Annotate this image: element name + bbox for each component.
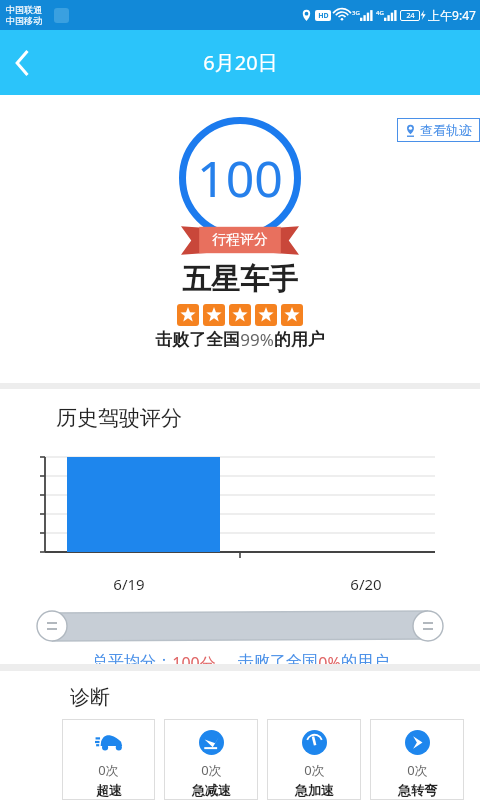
button[interactable]: 0次 [370,719,464,800]
staticText: 查看轨迹 [420,122,472,138]
staticText: 击败了全国 [155,329,240,350]
staticText: 的用户 [341,652,389,664]
staticText: 历史驾驶评分 [56,405,182,431]
button[interactable]: 0次 [164,719,258,800]
staticText: 0次 [201,761,222,779]
staticText: 4G [376,9,384,17]
staticText: 0次 [407,761,428,779]
staticText: 0% [318,652,341,664]
staticText: 6/19 [113,574,145,594]
staticText: 0次 [304,761,325,779]
staticText: 3G [352,9,360,17]
staticText: 0次 [98,761,119,779]
staticText: 五星车手 [182,261,298,298]
staticText: 24 [406,11,415,21]
staticText: HD [318,11,329,21]
staticText: 上午9:47 [428,7,476,23]
staticText: 诊断 [70,685,110,710]
staticText: 6/20 [350,574,382,594]
staticText: 100分 [172,652,216,664]
button[interactable]: 0次 [267,719,361,800]
staticText: 中国联通 [6,4,42,15]
staticText: 击败了全国 [238,652,318,664]
staticText: 99% [240,328,274,351]
button[interactable]: Back [0,40,46,86]
staticText: 急加速 [295,782,334,798]
button[interactable]: 0次 [62,719,155,800]
staticText: 100 [197,144,283,212]
staticText: 6月20日 [203,49,278,76]
staticText: 急转弯 [398,782,437,798]
staticText: 总平均分： [92,652,172,664]
staticText: 急减速 [192,782,231,798]
staticText: 超速 [96,782,122,798]
staticText: 中国移动 [6,15,42,26]
button[interactable]: 查看轨迹 [405,118,472,142]
staticText: 的用户 [274,329,325,350]
staticText: 行程评分 [212,231,268,249]
